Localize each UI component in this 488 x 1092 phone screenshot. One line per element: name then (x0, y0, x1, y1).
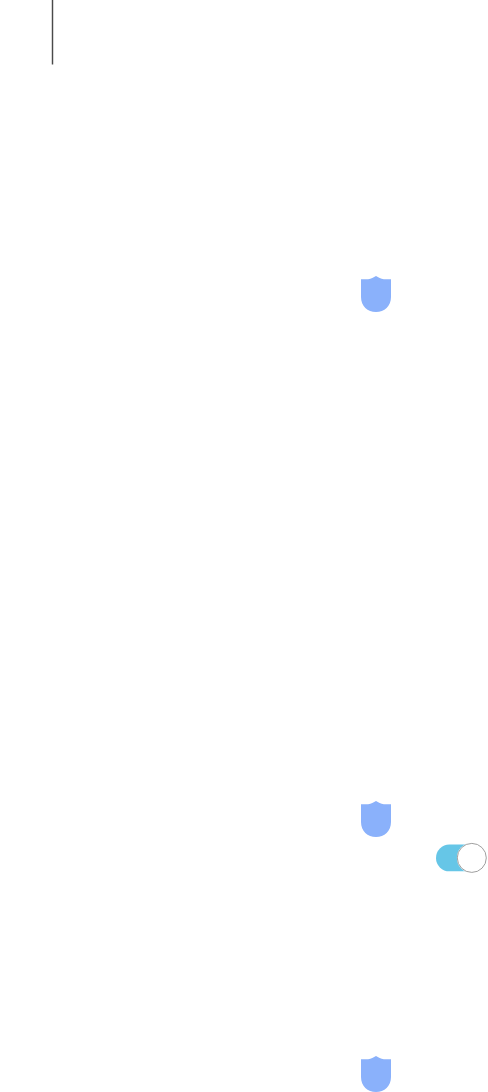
button[interactable]: Auto blocker, on (436, 842, 486, 872)
button[interactable]: Security and privacy (0, 258, 488, 330)
button[interactable]: Search settings (16, 0, 112, 64)
button[interactable]: Auto blocker (0, 783, 488, 855)
button[interactable]: Device protection (0, 1051, 488, 1092)
